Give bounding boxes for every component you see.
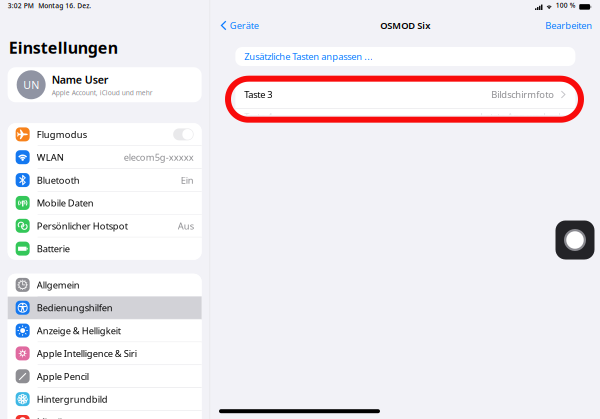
button[interactable]: Bedienungshilfen bbox=[8, 297, 202, 319]
button[interactable]: WLAN bbox=[8, 146, 202, 169]
button[interactable]: Geräte bbox=[215, 16, 263, 35]
staticText: Letzte App wechseln bbox=[480, 110, 566, 122]
staticText: Name User bbox=[52, 72, 109, 87]
button[interactable]: Apple Pencil bbox=[8, 365, 202, 388]
staticText: Zusätzliche Tasten anpassen ... bbox=[244, 50, 373, 63]
staticText: Mobile Daten bbox=[37, 197, 94, 209]
staticText: 3:02 PM bbox=[8, 1, 34, 10]
button[interactable]: Allgemein bbox=[8, 274, 202, 297]
button[interactable]: Persönlicher Hotspot bbox=[8, 215, 202, 237]
button[interactable]: Mobile Daten bbox=[8, 192, 202, 215]
staticText: elecom5g-xxxxx bbox=[124, 151, 194, 163]
button[interactable]: Mitteilungen bbox=[8, 411, 202, 419]
button[interactable]: Zusätzliche Tasten anpassen ... bbox=[235, 47, 575, 66]
staticText: Geräte bbox=[230, 19, 259, 32]
staticText: UN bbox=[23, 78, 39, 92]
staticText: Ein bbox=[181, 174, 194, 186]
button[interactable]: UN bbox=[8, 67, 202, 102]
staticText: Taste 3 bbox=[244, 88, 272, 101]
staticText: Bearbeiten bbox=[545, 19, 592, 32]
staticText: Apple Pencil bbox=[37, 370, 89, 382]
staticText: WLAN bbox=[37, 151, 64, 163]
button[interactable]: Taste 3 bbox=[235, 81, 575, 108]
staticText: Allgemein bbox=[37, 279, 80, 291]
staticText: 100 % bbox=[556, 1, 576, 10]
staticText: OSMOD Six bbox=[380, 19, 430, 32]
button[interactable]: Bearbeiten bbox=[541, 16, 596, 35]
button[interactable]: AssistiveTouch bbox=[555, 220, 594, 259]
staticText: Flugmodus bbox=[37, 128, 87, 141]
staticText: Apple Account, iCloud und mehr bbox=[52, 88, 153, 97]
staticText: Montag 16. Dez. bbox=[38, 1, 91, 10]
button[interactable]: Hintergrundbild bbox=[8, 388, 202, 411]
staticText: Anzeige & Helligkeit bbox=[37, 324, 121, 337]
staticText: Einstellungen bbox=[9, 37, 118, 58]
staticText: Mitteilungen bbox=[37, 416, 91, 419]
staticText: Bedienungshilfen bbox=[37, 301, 113, 314]
staticText: Taste 4 bbox=[244, 110, 272, 122]
staticText: Hintergrundbild bbox=[37, 393, 108, 405]
staticText: Aus bbox=[178, 220, 194, 232]
button[interactable]: Bluetooth bbox=[8, 169, 202, 192]
staticText: Persönlicher Hotspot bbox=[37, 220, 128, 232]
button[interactable]: Flugmodus bbox=[8, 123, 202, 146]
button[interactable]: Batterie bbox=[8, 237, 202, 260]
staticText: Bildschirmfoto bbox=[491, 88, 554, 101]
staticText: Bluetooth bbox=[37, 174, 80, 186]
button[interactable]: Apple Intelligence & Siri bbox=[8, 342, 202, 365]
staticText: Apple Intelligence & Siri bbox=[37, 347, 137, 360]
staticText: Batterie bbox=[37, 242, 70, 255]
button[interactable]: Anzeige & Helligkeit bbox=[8, 319, 202, 342]
